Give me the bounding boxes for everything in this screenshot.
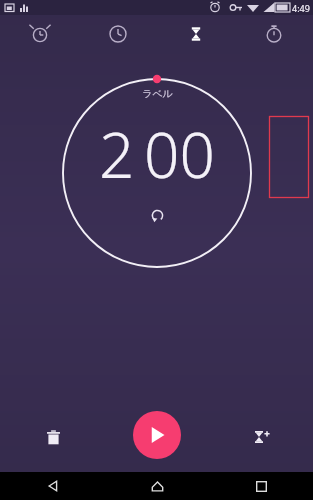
staticText: 2 [99,112,135,196]
staticText: ラベル [142,87,173,100]
button[interactable]: Delete timer [36,420,70,454]
button[interactable]: Clock [79,15,157,53]
button[interactable]: Alarm [0,15,79,53]
staticText: 4:49 [292,2,310,14]
staticText: 00 [144,112,215,196]
button[interactable]: Reset [144,202,170,228]
button[interactable]: Timer [157,15,235,53]
button[interactable]: Start timer [133,411,181,459]
button[interactable]: Next timer slot [269,116,309,198]
button[interactable]: Recents [248,473,274,499]
button[interactable]: Home [144,473,170,499]
button[interactable]: Stopwatch [235,15,313,53]
button[interactable]: Back [40,473,66,499]
button[interactable]: Add timer [244,420,278,454]
button[interactable]: Timer progress [57,73,257,273]
